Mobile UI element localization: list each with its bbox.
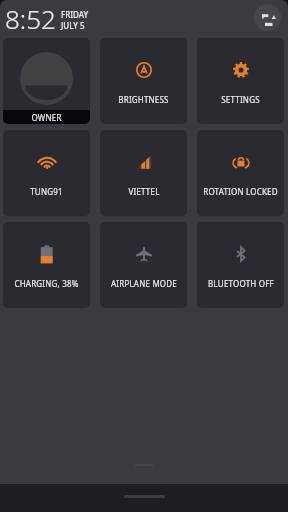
button[interactable]: BRIGHTNESS: [100, 38, 187, 124]
button[interactable]: OWNER: [3, 38, 90, 124]
staticText: VIETTEL: [128, 186, 160, 197]
staticText: ROTATION LOCKED: [203, 186, 278, 197]
staticText: SETTINGS: [221, 94, 260, 105]
button[interactable]: CHARGING, 38%: [3, 222, 90, 308]
staticText: OWNER: [31, 112, 62, 123]
button[interactable]: ROTATION LOCKED: [197, 130, 284, 216]
staticText: BLUETOOTH OFF: [208, 278, 274, 289]
staticText: JULY 5: [61, 20, 85, 31]
staticText: CHARGING, 38%: [14, 278, 79, 289]
button[interactable]: AIRPLANE MODE: [100, 222, 187, 308]
button[interactable]: VIETTEL: [100, 130, 187, 216]
button[interactable]: SETTINGS: [197, 38, 284, 124]
staticText: FRIDAY: [61, 9, 89, 20]
button[interactable]: TUNG91: [3, 130, 90, 216]
staticText: AIRPLANE MODE: [111, 278, 177, 289]
staticText: TUNG91: [30, 186, 63, 197]
button[interactable]: Notifications: [254, 4, 281, 31]
button[interactable]: BLUETOOTH OFF: [197, 222, 284, 308]
staticText: 8:52: [5, 1, 56, 36]
staticText: BRIGHTNESS: [118, 94, 169, 105]
